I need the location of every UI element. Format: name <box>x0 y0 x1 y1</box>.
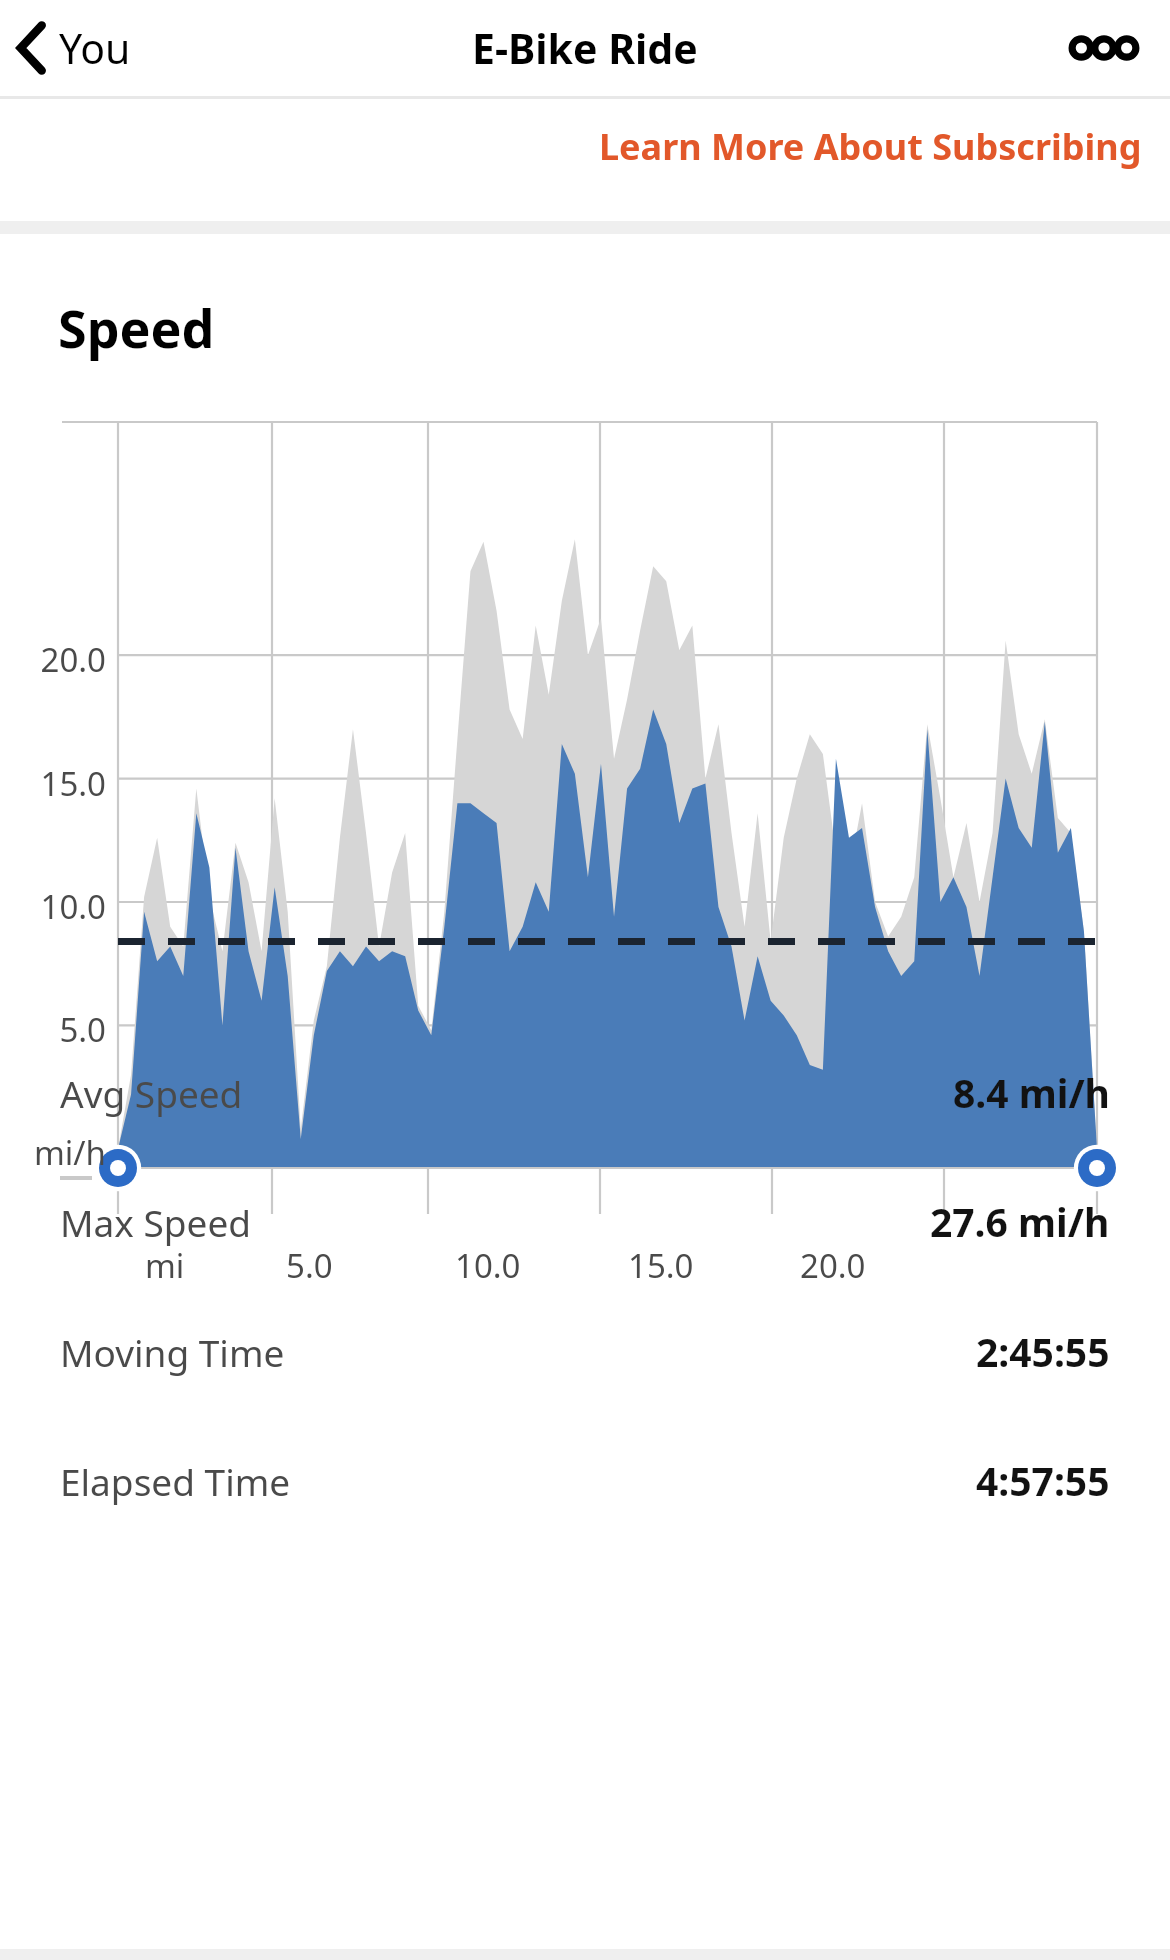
staticText: 5.0 <box>286 1243 333 1288</box>
staticText: 20.0 <box>800 1243 866 1288</box>
staticText: 2:45:55 <box>976 1325 1110 1378</box>
staticText: Learn More About Subscribing <box>599 122 1142 171</box>
staticText: 4:57:55 <box>976 1454 1110 1507</box>
button[interactable]: Avg Speed <box>0 1028 1170 1157</box>
button[interactable]: Moving Time <box>0 1287 1170 1416</box>
staticText: 27.6 mi/h <box>930 1195 1110 1248</box>
staticText: Max Speed <box>60 1197 252 1247</box>
button[interactable]: Max Speed <box>0 1157 1170 1286</box>
button[interactable]: Learn More About Subscribing <box>571 112 1170 181</box>
button[interactable]: More options <box>1038 10 1170 86</box>
staticText: Speed <box>58 292 215 363</box>
staticText: Moving Time <box>60 1327 285 1377</box>
staticText: 5.0 <box>0 1007 106 1052</box>
staticText: 15.0 <box>628 1243 694 1288</box>
staticText: 15.0 <box>0 761 106 806</box>
staticText: You <box>59 20 131 76</box>
staticText: Avg Speed <box>60 1068 243 1118</box>
staticText: 8.4 mi/h <box>953 1066 1110 1119</box>
staticText: Elapsed Time <box>60 1456 291 1506</box>
staticText: 10.0 <box>0 884 106 929</box>
staticText: mi <box>145 1243 185 1288</box>
staticText: 10.0 <box>455 1243 521 1288</box>
button[interactable]: Elapsed Time <box>0 1416 1170 1545</box>
staticText: E-Bike Ride <box>472 20 698 76</box>
other: Back <box>16 24 44 72</box>
staticText: mi/h <box>0 1130 106 1175</box>
staticText: 20.0 <box>0 637 106 682</box>
button[interactable]: Back <box>0 10 147 86</box>
